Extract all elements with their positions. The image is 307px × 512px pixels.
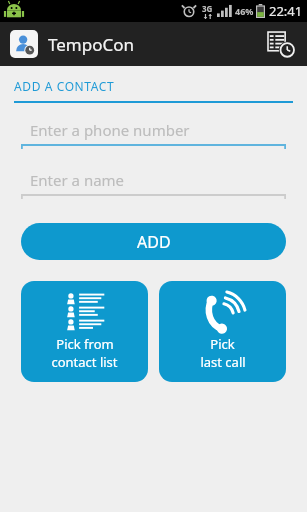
button[interactable]: Enter a phone number — [21, 119, 286, 149]
staticText: ADD A CONTACT — [14, 78, 115, 94]
button[interactable]: ADD — [21, 223, 286, 260]
staticText: 46% — [235, 5, 254, 17]
staticText: Pick from — [56, 335, 114, 353]
button[interactable]: Pick last call — [159, 281, 286, 382]
staticText: ADD — [137, 231, 171, 253]
button[interactable]: Scheduled contacts — [259, 22, 303, 66]
staticText: Pick — [210, 335, 235, 353]
button[interactable]: Pick from contact list — [21, 281, 148, 382]
staticText: contact list — [51, 353, 118, 371]
button[interactable]: Enter a name — [21, 169, 286, 199]
staticText: 22:41 — [269, 2, 303, 20]
staticText: last call — [200, 353, 246, 371]
staticText: Enter a name — [30, 170, 125, 190]
staticText: 3G — [202, 3, 213, 14]
staticText: Enter a phone number — [30, 120, 190, 140]
staticText: TempoCon — [48, 33, 135, 56]
